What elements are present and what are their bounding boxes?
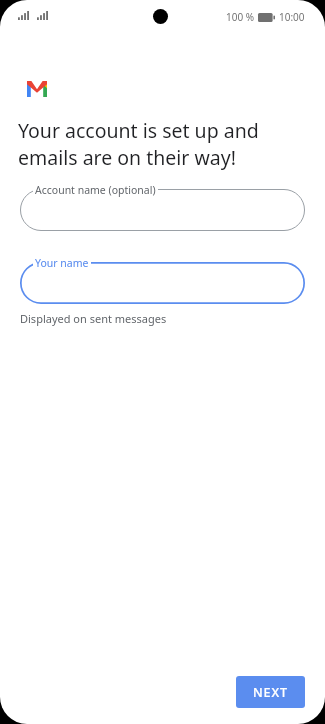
button[interactable]: Account name (optional): [20, 189, 305, 231]
staticText: emails are on their way!: [18, 144, 236, 171]
button[interactable]: NEXT: [236, 676, 305, 708]
staticText: 10:00: [279, 10, 305, 24]
button[interactable]: Your name: [20, 262, 305, 304]
staticText: Displayed on sent messages: [20, 311, 167, 326]
staticText: 100 %: [226, 10, 255, 24]
staticText: Account name (optional): [35, 183, 156, 197]
staticText: Your name: [35, 256, 89, 270]
staticText: Your account is set up and: [18, 117, 259, 144]
staticText: NEXT: [253, 684, 288, 701]
